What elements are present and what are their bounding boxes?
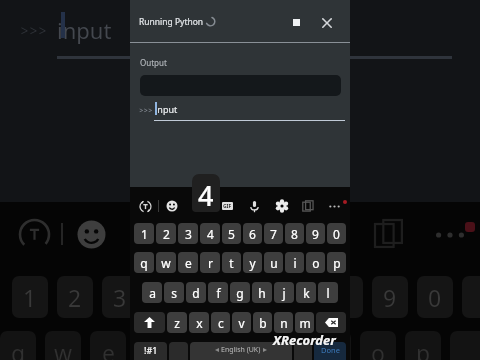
- staticText: Done: [321, 345, 340, 355]
- button[interactable]: s: [164, 282, 184, 303]
- staticText: input: [57, 15, 112, 45]
- staticText: n: [280, 315, 288, 331]
- button[interactable]: Backspace: [316, 312, 346, 333]
- staticText: r: [208, 255, 213, 271]
- staticText: 4: [158, 282, 172, 313]
- button[interactable]: z: [167, 312, 187, 333]
- button[interactable]: Voice input: [244, 196, 264, 216]
- button[interactable]: f: [208, 282, 228, 303]
- staticText: z: [174, 315, 180, 331]
- button[interactable]: Emoji: [162, 196, 182, 216]
- button[interactable]: g: [230, 282, 250, 303]
- staticText: XRecorder: [273, 331, 336, 349]
- staticText: e: [102, 337, 115, 360]
- staticText: w: [54, 337, 73, 360]
- button[interactable]: v: [232, 312, 251, 333]
- staticText: 8: [291, 226, 298, 242]
- button[interactable]: d: [186, 282, 206, 303]
- staticText: p: [333, 255, 341, 271]
- button[interactable]: !#1: [134, 342, 167, 360]
- staticText: 6: [248, 282, 262, 313]
- staticText: l: [326, 285, 330, 301]
- button[interactable]: a: [142, 282, 162, 303]
- staticText: 7: [293, 282, 307, 313]
- staticText: q: [11, 337, 26, 360]
- staticText: d: [192, 285, 200, 301]
- staticText: j: [282, 285, 286, 301]
- staticText: q: [140, 255, 148, 271]
- button[interactable]: More options: [324, 196, 344, 216]
- staticText: b: [259, 315, 267, 331]
- staticText: !#1: [144, 344, 158, 356]
- button[interactable]: Period: [294, 342, 312, 360]
- staticText: 1: [23, 282, 37, 313]
- staticText: o: [371, 337, 385, 360]
- staticText: 7: [270, 226, 277, 242]
- button[interactable]: 7: [264, 223, 283, 244]
- staticText: f: [216, 285, 221, 301]
- button[interactable]: 1: [134, 223, 154, 244]
- button[interactable]: 9: [306, 223, 325, 244]
- button[interactable]: e: [178, 252, 198, 273]
- button[interactable]: Clipboard: [298, 196, 318, 216]
- staticText: 5: [203, 282, 217, 313]
- button[interactable]: Shift: [134, 312, 165, 333]
- staticText: 2: [68, 282, 82, 313]
- staticText: 9: [383, 282, 397, 313]
- button[interactable]: n: [274, 312, 293, 333]
- button[interactable]: u: [264, 252, 283, 273]
- staticText: c: [218, 315, 224, 331]
- button[interactable]: k: [296, 282, 316, 303]
- button[interactable]: Stop: [286, 12, 307, 33]
- staticText: o: [312, 255, 320, 271]
- staticText: 2: [163, 226, 170, 242]
- button[interactable]: 5: [222, 223, 241, 244]
- button[interactable]: c: [211, 312, 230, 333]
- button[interactable]: m: [295, 312, 314, 333]
- button[interactable]: Translate: [135, 196, 155, 216]
- button[interactable]: Comma: [169, 342, 188, 360]
- button[interactable]: 0: [327, 223, 346, 244]
- staticText: y: [249, 255, 256, 271]
- staticText: 0: [428, 282, 442, 313]
- button[interactable]: 3: [178, 223, 198, 244]
- staticText: 3: [185, 226, 192, 242]
- staticText: r: [148, 337, 158, 360]
- button[interactable]: 4: [200, 223, 220, 244]
- button[interactable]: GIF: [217, 196, 237, 216]
- staticText: e: [185, 255, 192, 271]
- button[interactable]: y: [243, 252, 262, 273]
- button[interactable]: r: [200, 252, 220, 273]
- button[interactable]: x: [189, 312, 209, 333]
- button[interactable]: Settings: [272, 196, 292, 216]
- staticText: t: [229, 255, 234, 271]
- staticText: u: [281, 337, 296, 360]
- staticText: h: [258, 285, 266, 301]
- staticText: Output: [140, 57, 167, 68]
- button[interactable]: o: [306, 252, 325, 273]
- button[interactable]: h: [252, 282, 272, 303]
- staticText: English (UK): [221, 345, 261, 355]
- button[interactable]: p: [327, 252, 346, 273]
- button[interactable]: 8: [285, 223, 304, 244]
- button[interactable]: Space: [190, 342, 292, 360]
- button[interactable]: b: [253, 312, 272, 333]
- staticText: i: [330, 337, 336, 360]
- button[interactable]: w: [156, 252, 176, 273]
- staticText: 6: [249, 226, 256, 242]
- staticText: a: [149, 285, 156, 301]
- button[interactable]: q: [134, 252, 154, 273]
- staticText: x: [196, 315, 203, 331]
- button[interactable]: l: [318, 282, 338, 303]
- staticText: 8: [338, 282, 352, 313]
- staticText: u: [270, 255, 278, 271]
- button[interactable]: 6: [243, 223, 262, 244]
- button[interactable]: j: [274, 282, 294, 303]
- button[interactable]: Done: [314, 342, 346, 360]
- staticText: t: [194, 337, 203, 360]
- button[interactable]: 2: [156, 223, 176, 244]
- button[interactable]: Close: [316, 12, 337, 33]
- button[interactable]: i: [285, 252, 304, 273]
- button[interactable]: t: [222, 252, 241, 273]
